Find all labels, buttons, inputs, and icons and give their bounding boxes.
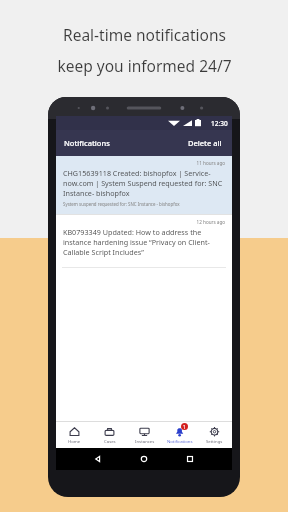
button[interactable]: Home [56,422,92,448]
staticText: Settings [206,438,223,444]
button[interactable]: Cases [92,422,127,448]
staticText: System suspend requested for: SNC Instan… [63,201,180,207]
button[interactable]: Back [94,455,102,463]
button[interactable]: Instances [127,422,162,448]
staticText: Instances [135,438,155,444]
button[interactable]: 11 hours ago [56,156,232,214]
staticText: 12:30 [211,119,228,128]
button[interactable]: Recents [186,455,194,463]
staticText: keep you informed 24/7 [57,55,232,76]
staticText: KB0793349 Updated: How to address the in… [63,227,225,257]
button[interactable]: Delete all [186,136,224,150]
staticText: Home [68,438,81,444]
staticText: Notifications [167,438,193,444]
button[interactable]: Settings [197,422,232,448]
button[interactable]: Home [140,455,148,463]
staticText: 1 [183,424,186,430]
button[interactable]: Notifications [162,422,197,448]
staticText: 11 hours ago [63,160,225,166]
button[interactable]: 12 hours ago [56,215,232,267]
button[interactable]: Notifications [64,138,110,148]
staticText: Cases [104,438,116,444]
staticText: Delete all [188,138,222,148]
staticText: Real-time notifications [63,24,226,45]
staticText: 12 hours ago [63,219,225,225]
staticText: CHG15639118 Created: bishopfox | Service… [63,168,225,198]
